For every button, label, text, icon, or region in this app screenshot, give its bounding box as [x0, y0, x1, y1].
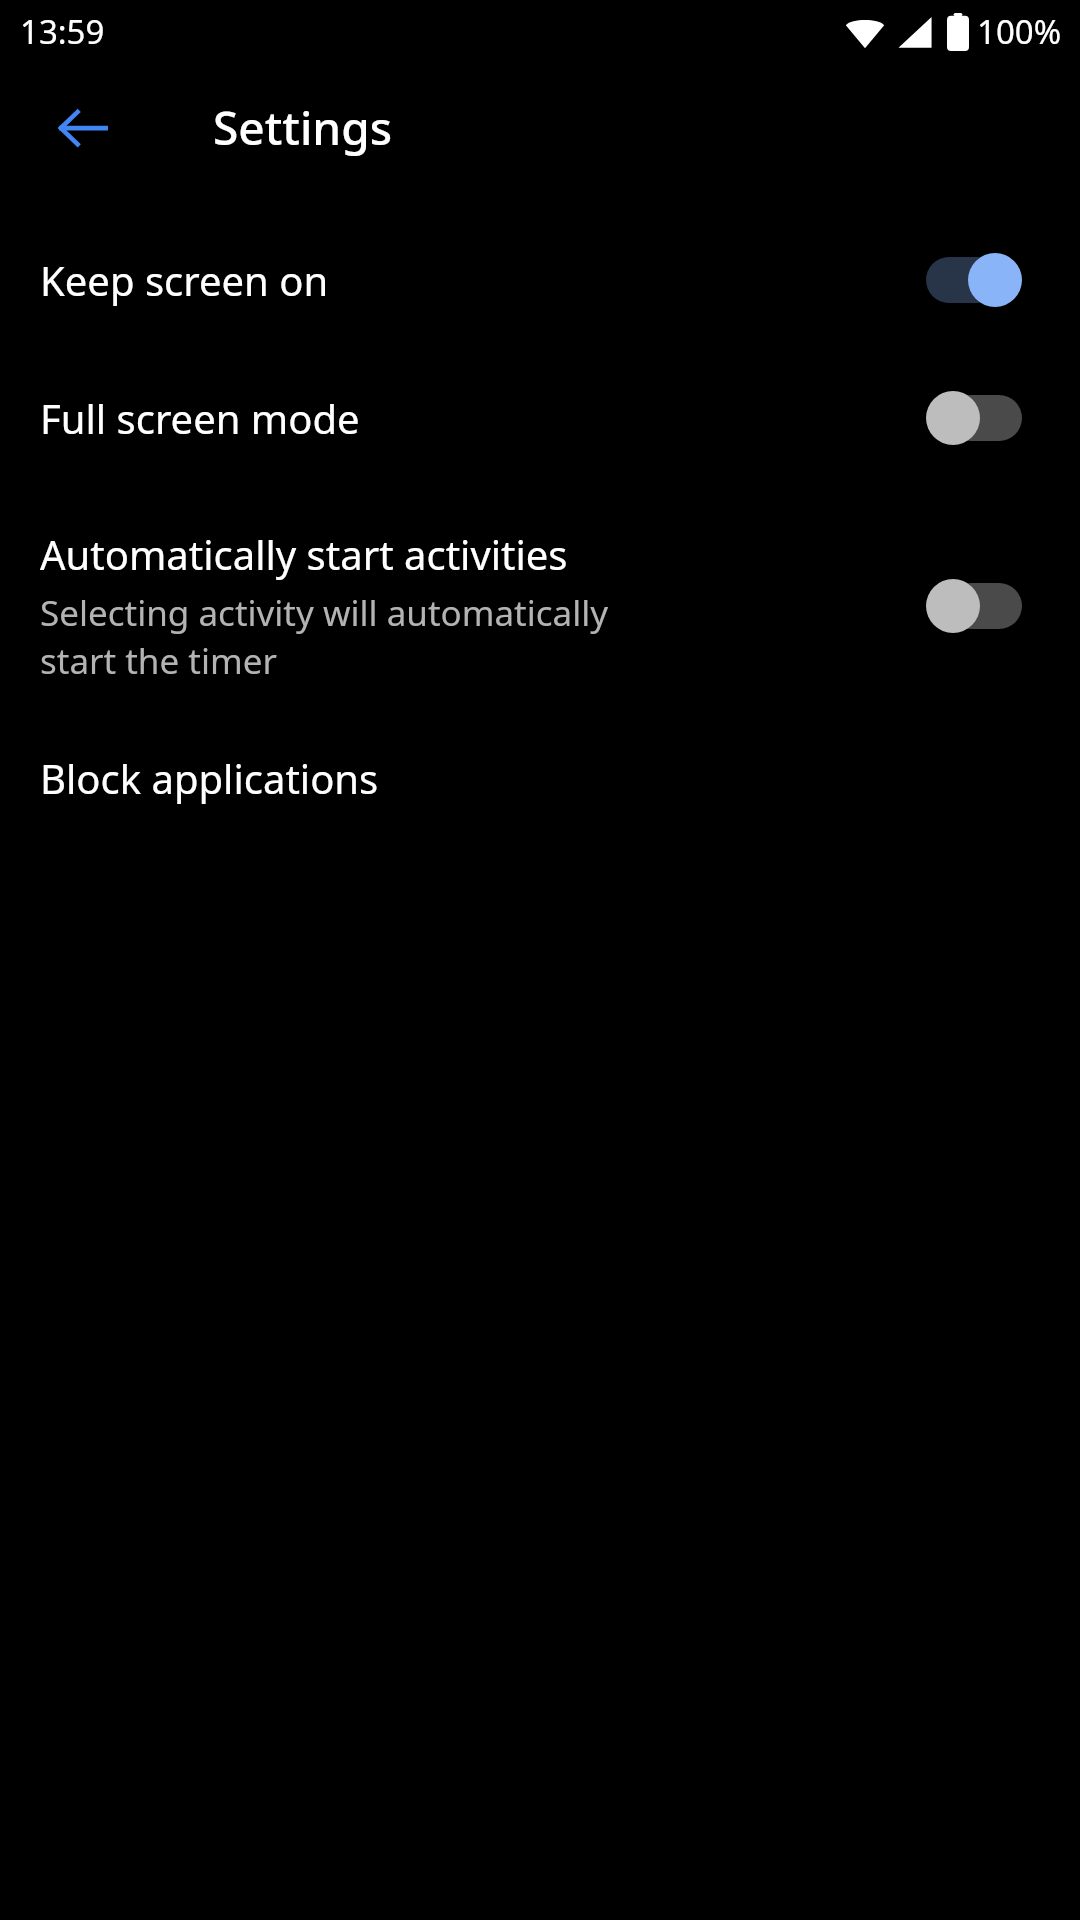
button[interactable]: Automatically start activities [0, 498, 1080, 713]
staticText: Settings [213, 96, 393, 159]
staticText: Automatically start activities [40, 527, 568, 581]
staticText: Block applications [40, 751, 379, 805]
button[interactable]: Off [926, 383, 1022, 453]
staticText: 100% [977, 9, 1062, 54]
staticText: Full screen mode [40, 391, 360, 445]
button[interactable]: Back [28, 72, 138, 182]
staticText: 13:59 [20, 9, 105, 54]
button[interactable]: Off [926, 571, 1022, 641]
button[interactable]: Full screen mode [0, 338, 1080, 498]
button[interactable]: On [926, 245, 1022, 315]
button[interactable]: Keep screen on [0, 222, 1080, 338]
button[interactable]: Block applications [0, 713, 1080, 843]
staticText: Selecting activity will automatically st… [40, 589, 655, 684]
staticText: Keep screen on [40, 253, 329, 307]
